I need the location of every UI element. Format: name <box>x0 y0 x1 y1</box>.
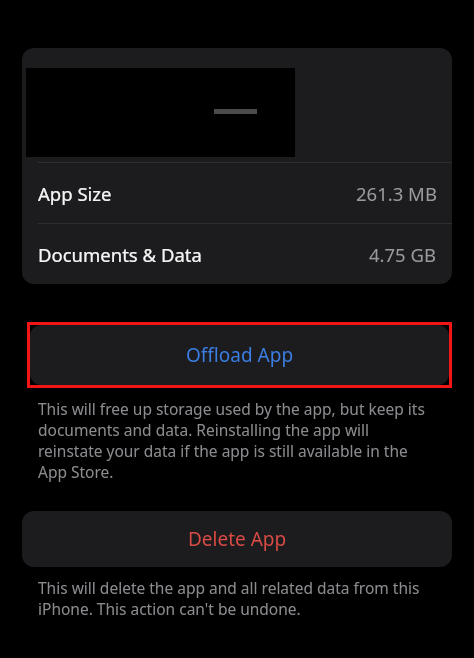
button[interactable]: App Size <box>22 163 452 223</box>
staticText: App Size <box>38 181 112 206</box>
staticText: This will delete the app and all related… <box>38 577 420 598</box>
button[interactable]: Offload App <box>30 325 449 385</box>
button[interactable]: Delete App <box>22 511 452 567</box>
staticText: App Store. <box>38 461 114 482</box>
staticText: documents and data. Reinstalling the app… <box>38 419 370 440</box>
staticText: reinstate your data if the app is still … <box>38 440 408 461</box>
button[interactable]: Documents & Data <box>22 224 452 284</box>
staticText: Delete App <box>188 526 287 552</box>
staticText: 261.3 MB <box>356 181 437 206</box>
staticText: Documents & Data <box>38 242 202 267</box>
staticText: iPhone. This action can't be undone. <box>38 598 301 619</box>
staticText: 4.75 GB <box>369 242 437 267</box>
staticText: Offload App <box>186 342 294 368</box>
staticText: This will free up storage used by the ap… <box>38 398 425 419</box>
